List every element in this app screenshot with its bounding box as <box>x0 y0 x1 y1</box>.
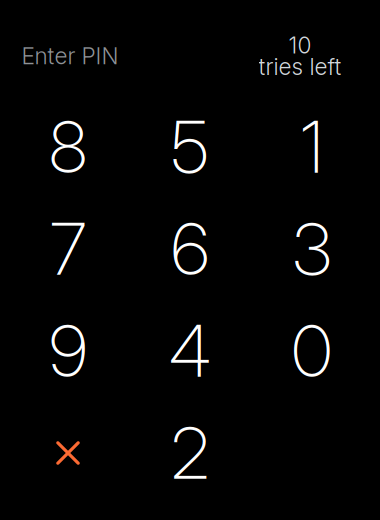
staticText: 5 <box>171 104 209 190</box>
staticText: 7 <box>50 206 86 292</box>
button[interactable]: 0 <box>251 300 373 402</box>
button[interactable]: 8 <box>7 96 129 198</box>
button[interactable]: 1 <box>251 96 373 198</box>
staticText: 8 <box>49 104 87 190</box>
button[interactable]: 4 <box>129 300 251 402</box>
staticText: 4 <box>169 308 211 394</box>
button[interactable]: 6 <box>129 198 251 300</box>
staticText: Enter PIN <box>21 42 118 70</box>
staticText: 1 <box>300 104 323 190</box>
button[interactable]: 5 <box>129 96 251 198</box>
button[interactable]: 9 <box>7 300 129 402</box>
staticText: tries left <box>258 53 341 80</box>
button[interactable]: 2 <box>129 402 251 504</box>
staticText: 9 <box>49 308 87 394</box>
staticText: 3 <box>292 206 331 292</box>
staticText: 6 <box>171 206 209 292</box>
button[interactable]: 7 <box>7 198 129 300</box>
button[interactable]: 3 <box>251 198 373 300</box>
button[interactable]: Delete <box>7 402 129 504</box>
staticText: 0 <box>291 308 332 394</box>
staticText: 2 <box>171 410 209 496</box>
staticText: 10 <box>288 32 311 59</box>
